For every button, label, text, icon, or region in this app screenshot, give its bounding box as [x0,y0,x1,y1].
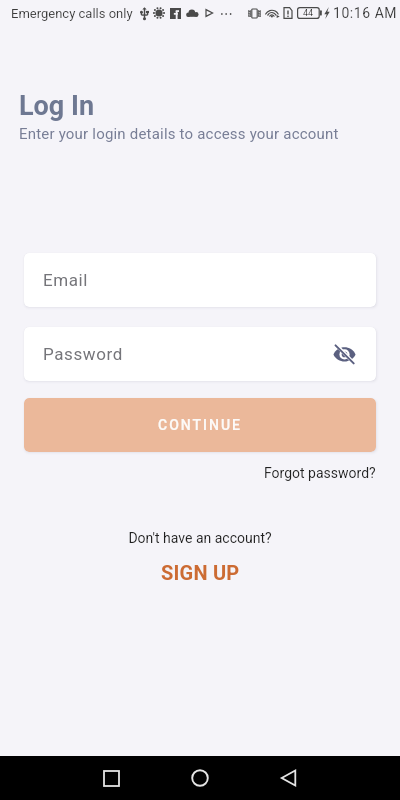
button[interactable]: Home [155,756,244,800]
button[interactable]: CONTINUE [24,398,376,452]
button[interactable]: Forgot password? [264,463,400,483]
staticText: Don't have an account? [0,530,400,546]
button[interactable]: SIGN UP [149,559,252,586]
button[interactable]: Back [244,756,333,800]
staticText: Emergency calls only [11,6,133,21]
staticText: 10:16 AM [333,5,398,21]
staticText: ··· [220,4,234,23]
button[interactable]: Show password [330,340,358,368]
staticText: CONTINUE [158,417,243,433]
button[interactable]: Email [24,253,376,307]
button[interactable]: Recents [68,756,155,800]
staticText: Enter your login details to access your … [19,125,339,143]
staticText: Log In [19,90,95,122]
button[interactable]: Password [24,327,376,381]
staticText: Password [43,344,123,364]
staticText: Email [43,270,89,290]
staticText: Forgot password? [264,465,376,481]
staticText: SIGN UP [161,561,240,584]
staticText: 44 [303,8,314,19]
